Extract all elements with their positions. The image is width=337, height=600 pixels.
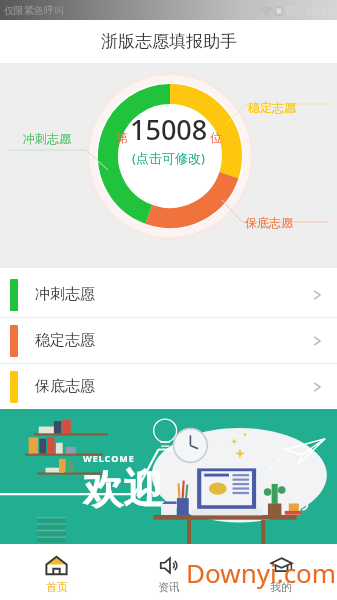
staticText: 冲刺志愿 [23,131,71,146]
staticText: 我的 [270,580,292,594]
staticText: 冲刺志愿 [35,285,95,304]
staticText: 浙版志愿填报助手 [101,31,237,52]
staticText: 稳定志愿 [248,100,296,115]
button[interactable]: 保底志愿 [0,364,337,409]
staticText: 仅限紧急呼叫 [4,4,64,17]
staticText: (点击可修改) [132,149,205,167]
staticText: 保底志愿 [35,377,95,396]
staticText: 资讯 [158,580,180,594]
button[interactable]: 资讯 [113,548,225,600]
staticText: 保底志愿 [245,215,293,230]
button[interactable]: 首页 [0,548,113,600]
button[interactable]: 我的 [225,548,337,600]
staticText: 首页 [46,580,68,594]
staticText: 15008 [130,111,208,148]
staticText: Downyi.com [186,555,337,590]
staticText: 稳定志愿 [35,331,95,350]
button[interactable]: 第 [0,111,337,167]
button[interactable]: WELCOME [0,409,337,544]
staticText: 位 [210,130,222,145]
staticText: 第 [116,130,128,145]
button[interactable]: 稳定志愿 [0,318,337,363]
staticText: 欢迎 [83,464,163,514]
staticText: WELCOME [83,452,135,464]
button[interactable]: 冲刺志愿 [0,272,337,317]
